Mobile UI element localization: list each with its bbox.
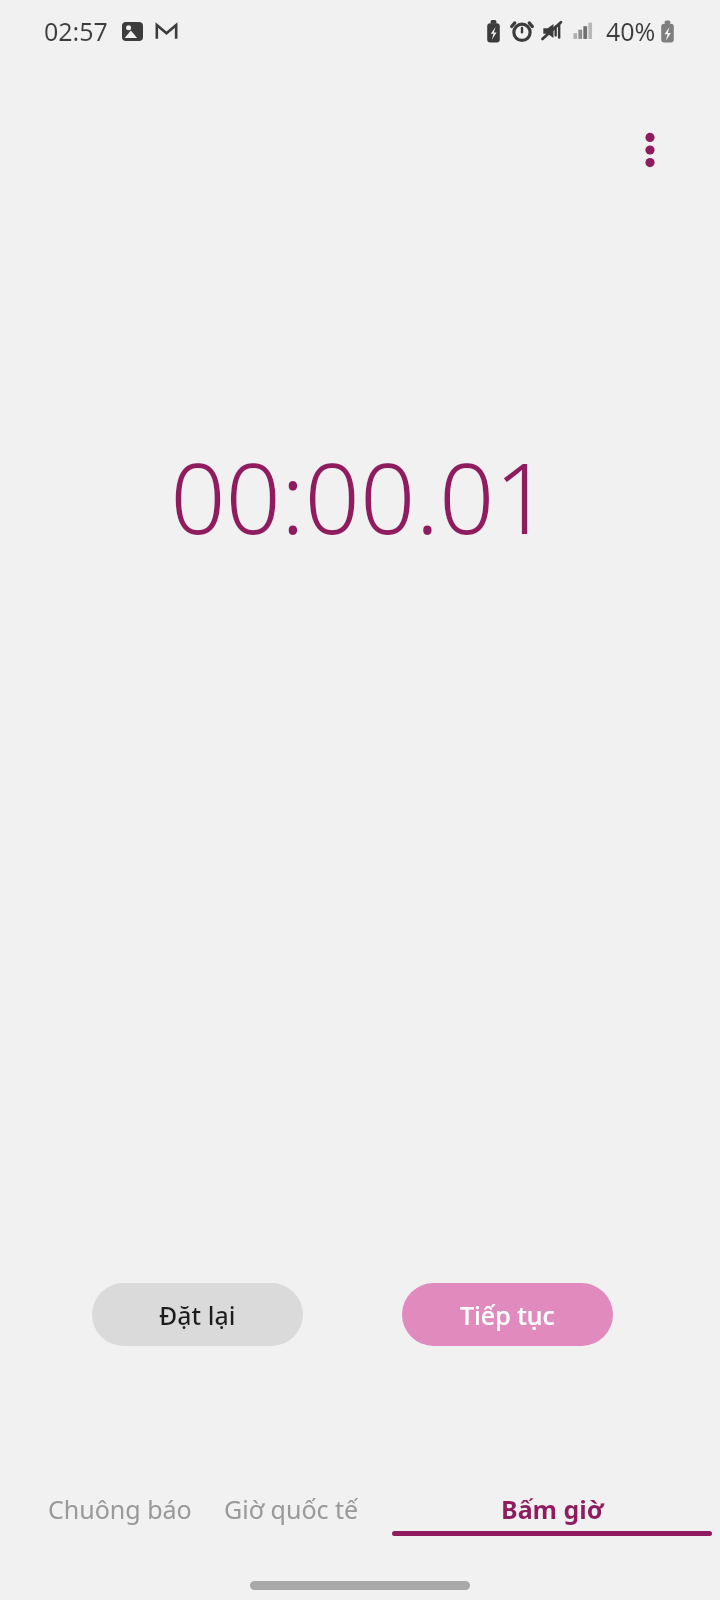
staticText: 02:57	[44, 14, 108, 48]
button[interactable]: Bấm giờ	[384, 1478, 720, 1540]
button[interactable]: Chuông báo	[40, 1478, 200, 1540]
staticText: Tiếp tục	[460, 1298, 555, 1332]
button[interactable]: Đặt lại	[92, 1283, 303, 1346]
button[interactable]: More options	[608, 108, 692, 192]
staticText: Chuông báo	[48, 1492, 192, 1526]
staticText: 00:00.01	[170, 430, 550, 550]
button[interactable]: Giờ quốc tế	[216, 1478, 367, 1540]
staticText: 40%	[606, 14, 656, 48]
staticText: Bấm giờ	[501, 1492, 604, 1526]
staticText: Giờ quốc tế	[224, 1492, 359, 1526]
button[interactable]: Tiếp tục	[402, 1283, 613, 1346]
staticText: Đặt lại	[159, 1298, 236, 1332]
